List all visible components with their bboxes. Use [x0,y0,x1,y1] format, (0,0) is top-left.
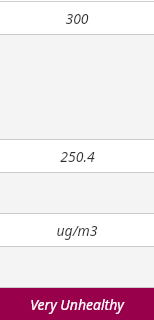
button[interactable]: Very Unhealthy [0,288,154,320]
button[interactable]: 250.4 [0,140,154,172]
staticText: ug/m3 [56,221,98,240]
staticText: Very Unhealthy [30,295,124,314]
button[interactable]: 300 [0,2,154,34]
staticText: 300 [65,9,89,28]
button[interactable]: ug/m3 [0,214,154,246]
staticText: 250.4 [60,147,95,166]
